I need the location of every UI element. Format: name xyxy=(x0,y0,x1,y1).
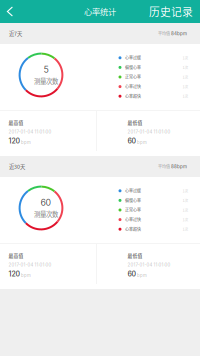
staticText: 84bpm xyxy=(171,31,187,36)
staticText: 2017-01-04 11:01:00 xyxy=(8,129,51,134)
staticText: 偏慢心率 xyxy=(125,64,141,70)
staticText: 1次 xyxy=(182,84,188,89)
staticText: 1次 xyxy=(182,207,188,213)
staticText: 心率过缓 xyxy=(125,188,141,194)
staticText: 偏慢心率 xyxy=(125,197,141,203)
staticText: 心率超快 xyxy=(125,226,141,232)
staticText: 5 xyxy=(43,64,48,75)
staticText: 88bpm xyxy=(171,164,187,169)
staticText: 平均值 xyxy=(158,30,170,36)
staticText: 120 xyxy=(8,137,20,145)
staticText: 60 xyxy=(127,137,136,145)
staticText: bpm xyxy=(137,140,147,145)
staticText: 最低值 xyxy=(127,119,142,126)
staticText: 1次 xyxy=(182,198,188,203)
staticText: 1次 xyxy=(182,93,188,99)
staticText: 1次 xyxy=(182,74,188,80)
staticText: bpm xyxy=(21,140,31,145)
staticText: bpm xyxy=(137,273,147,278)
staticText: 测量次数 xyxy=(34,209,58,219)
staticText: 60 xyxy=(40,197,51,208)
staticText: 2017-01-04 11:01:00 xyxy=(127,129,170,134)
staticText: 心率过快 xyxy=(125,217,141,222)
staticText: 平均值 xyxy=(158,163,170,169)
staticText: 最高值 xyxy=(8,119,23,126)
staticText: 正常心率 xyxy=(125,207,141,213)
staticText: 2017-01-04 11:01:00 xyxy=(8,262,51,267)
staticText: 1次 xyxy=(182,55,188,60)
button[interactable]: 返回 xyxy=(0,0,22,23)
staticText: 1次 xyxy=(182,65,188,70)
staticText: 最高值 xyxy=(8,252,23,259)
staticText: 心率过缓 xyxy=(125,55,141,61)
staticText: 近30天 xyxy=(9,163,25,170)
button[interactable]: 历史记录 xyxy=(149,0,200,23)
staticText: 心率统计 xyxy=(84,5,116,17)
staticText: 正常心率 xyxy=(125,74,141,80)
staticText: 1次 xyxy=(182,188,188,193)
staticText: 1次 xyxy=(182,217,188,222)
staticText: 测量次数 xyxy=(34,76,58,86)
staticText: bpm xyxy=(21,273,31,278)
staticText: 心率过快 xyxy=(125,84,141,89)
staticText: 2017-01-04 11:01:00 xyxy=(127,262,170,267)
staticText: 心率超快 xyxy=(125,93,141,99)
staticText: 1次 xyxy=(182,226,188,232)
staticText: 最低值 xyxy=(127,252,142,259)
staticText: 近7天 xyxy=(9,30,22,37)
staticText: 历史记录 xyxy=(149,4,193,19)
staticText: 120 xyxy=(8,270,20,278)
staticText: 60 xyxy=(127,270,136,278)
